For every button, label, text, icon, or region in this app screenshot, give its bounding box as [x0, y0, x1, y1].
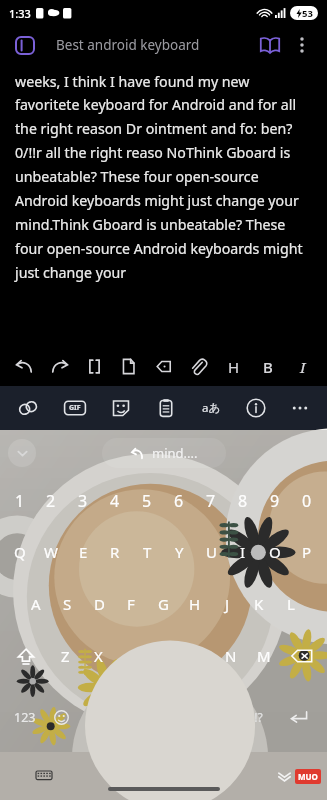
staticText: X — [94, 646, 103, 666]
staticText: 5 — [142, 490, 152, 512]
button[interactable]: MUO — [295, 769, 321, 784]
button[interactable]: Tag — [153, 356, 174, 377]
button[interactable]: Enter — [276, 682, 321, 752]
button[interactable]: P — [291, 526, 323, 578]
button[interactable]: Clipboard — [155, 397, 177, 419]
button[interactable]: W — [35, 526, 67, 578]
button[interactable]: More options — [289, 32, 315, 58]
button[interactable]: I — [227, 526, 259, 578]
staticText: F — [127, 594, 135, 614]
button[interactable]: Collapse toolbar — [8, 439, 36, 467]
button[interactable]: C — [115, 630, 148, 682]
button[interactable]: 8 — [227, 476, 259, 526]
staticText: N — [225, 646, 237, 666]
button[interactable]: Library — [257, 32, 283, 58]
button[interactable]: SwiftKey menu — [16, 396, 40, 420]
button[interactable]: 5 — [131, 476, 163, 526]
button[interactable]: F — [115, 578, 147, 630]
button[interactable]: H — [223, 356, 244, 377]
button[interactable]: U — [195, 526, 227, 578]
button[interactable]: Backspace — [280, 630, 323, 682]
staticText: MUO — [298, 771, 318, 782]
staticText: Y — [175, 542, 184, 562]
button[interactable]: GIF — [62, 398, 88, 418]
staticText: 3 — [78, 490, 88, 512]
button[interactable]: 3 — [67, 476, 99, 526]
staticText: O — [269, 542, 281, 562]
button[interactable]: 123 — [6, 682, 44, 752]
staticText: B — [263, 357, 273, 377]
button[interactable]: More — [289, 397, 311, 419]
button[interactable]: 9 — [259, 476, 291, 526]
button[interactable]: B — [257, 356, 278, 377]
staticText: H — [189, 594, 201, 614]
staticText: 1 — [15, 490, 25, 512]
button[interactable]: G — [147, 578, 179, 630]
staticText: P — [302, 542, 312, 562]
button[interactable]: L — [275, 578, 307, 630]
staticText: S — [63, 594, 72, 614]
staticText: C — [127, 646, 137, 666]
button[interactable]: Info — [245, 397, 267, 419]
staticText: Z — [61, 646, 70, 666]
button[interactable]: 7 — [195, 476, 227, 526]
button[interactable]: Z — [48, 630, 82, 682]
button[interactable]: N — [214, 630, 247, 682]
button[interactable]: Brackets — [84, 356, 105, 377]
button[interactable]: A — [20, 578, 51, 630]
button[interactable]: S — [51, 578, 83, 630]
staticText: mind.... — [152, 444, 198, 462]
button[interactable]: M — [247, 630, 280, 682]
staticText: M — [257, 646, 271, 666]
button[interactable]: Stickers — [110, 397, 132, 419]
button[interactable]: Reader mode — [12, 32, 38, 58]
button[interactable]: Emoji — [44, 682, 79, 752]
staticText: U — [206, 542, 217, 562]
button[interactable]: Attach file — [188, 356, 209, 377]
button[interactable]: H — [179, 578, 211, 630]
button[interactable]: Q — [4, 526, 35, 578]
button[interactable]: .!? — [238, 682, 276, 752]
button[interactable]: O — [259, 526, 291, 578]
button[interactable]: 2 — [35, 476, 67, 526]
button[interactable]: Redo — [49, 356, 70, 377]
button[interactable]: Languages — [199, 396, 223, 420]
staticText: 9 — [270, 490, 280, 512]
button[interactable]: X — [82, 630, 115, 682]
staticText: K — [254, 594, 264, 614]
button[interactable]: J — [211, 578, 243, 630]
button[interactable]: B — [181, 630, 214, 682]
staticText: 1:33 — [9, 6, 31, 21]
staticText: I — [240, 542, 246, 562]
button[interactable]: Y — [163, 526, 195, 578]
staticText: I — [300, 357, 306, 377]
staticText: 4 — [110, 490, 120, 512]
button[interactable]: mind.... — [102, 438, 226, 468]
staticText: B — [193, 646, 203, 666]
button[interactable]: 1 — [4, 476, 35, 526]
button[interactable]: R — [99, 526, 131, 578]
staticText: GIF — [69, 403, 81, 413]
button[interactable]: T — [131, 526, 163, 578]
button[interactable]: Shift — [4, 630, 48, 682]
button[interactable]: 0 — [291, 476, 323, 526]
staticText: A — [31, 594, 41, 614]
staticText: H — [228, 357, 240, 377]
button[interactable]: 4 — [99, 476, 131, 526]
button[interactable]: 6 — [163, 476, 195, 526]
button[interactable]: Hide keyboard — [34, 766, 54, 786]
button[interactable]: E — [67, 526, 99, 578]
button[interactable]: Insert page — [118, 356, 139, 377]
staticText: 2 — [46, 490, 56, 512]
button[interactable]: Best android keyboard — [56, 36, 257, 54]
button[interactable]: Microsoft SwiftKey — [79, 682, 238, 752]
button[interactable]: D — [83, 578, 115, 630]
staticText: 53 — [302, 7, 313, 20]
button[interactable]: V — [148, 630, 181, 682]
button[interactable]: K — [243, 578, 275, 630]
button[interactable]: I — [292, 356, 313, 377]
staticText: J — [225, 594, 230, 614]
button[interactable]: Undo — [14, 356, 35, 377]
